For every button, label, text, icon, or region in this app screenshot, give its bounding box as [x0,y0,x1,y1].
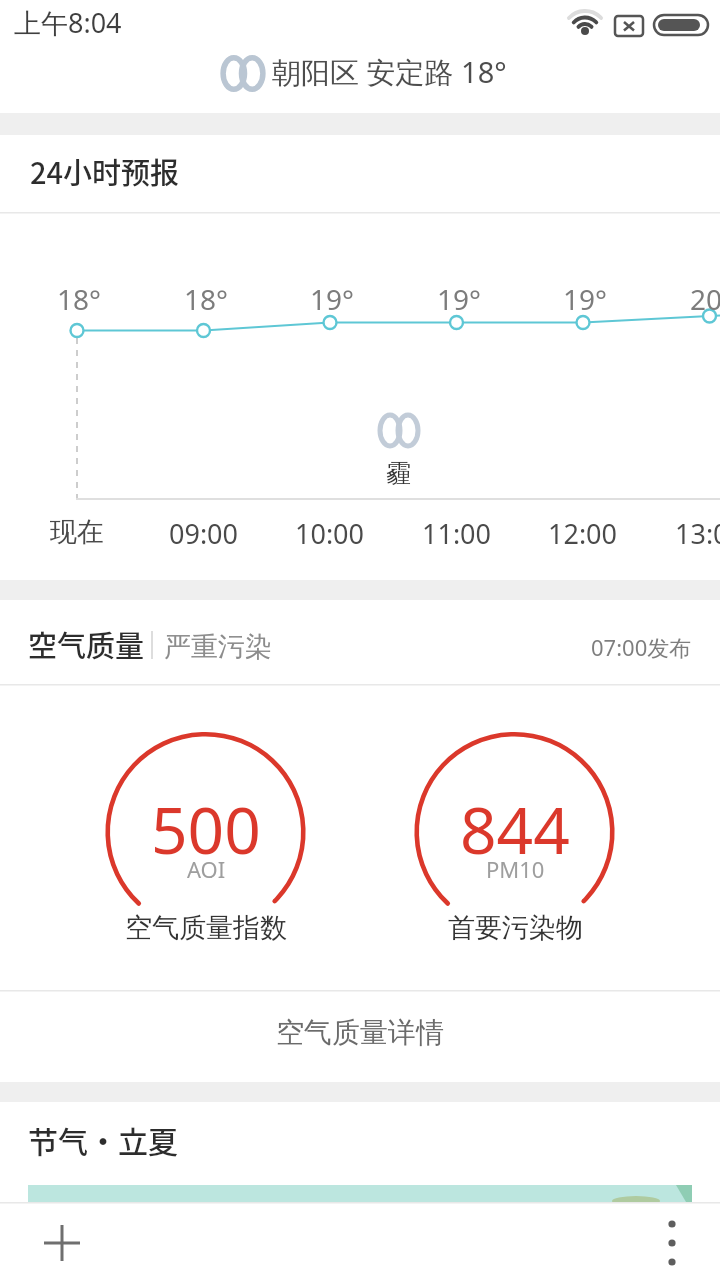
staticText: 11:00 [422,515,492,547]
staticText: 19° [563,280,608,312]
staticText: 严重污染 [164,630,272,662]
staticText: 19° [437,280,482,312]
staticText: 空气质量 [28,623,145,665]
staticText: 18° [184,280,229,312]
staticText: 10:00 [295,515,365,547]
button[interactable]: 空气质量详情 [0,986,720,1078]
staticText: AQI [187,854,226,878]
staticText: 24小时预报 [30,150,180,192]
button[interactable]: 朝阳区 安定路 18° [272,48,532,96]
staticText: 首要污染物 [448,911,583,943]
staticText: 节气・立夏 [28,1118,178,1161]
staticText: PM10 [486,854,545,878]
staticText: 13:00 [675,515,720,547]
staticText: 朝阳区 安定路 18° [272,52,507,92]
staticText: 空气质量指数 [125,911,287,943]
staticText: 上午8:04 [14,4,122,40]
staticText: 18° [57,280,102,312]
staticText: 844 [460,786,570,856]
staticText: 霾 [386,458,411,488]
staticText: 现在 [50,515,104,547]
button[interactable] [26,1207,98,1279]
staticText: 20° [690,280,720,312]
staticText: 500 [151,786,261,856]
staticText: 07:00发布 [591,632,692,662]
staticText: 19° [310,280,355,312]
staticText: 空气质量详情 [276,1015,444,1050]
button[interactable] [636,1207,708,1279]
staticText: 12:00 [548,515,618,547]
staticText: 09:00 [169,515,239,547]
